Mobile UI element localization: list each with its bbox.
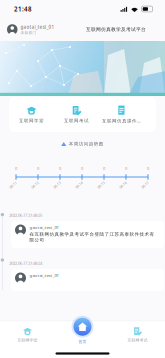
staticText: 0 — [81, 166, 83, 171]
staticText: gaotai_test_01 — [20, 24, 54, 30]
staticText: 06-11 — [8, 182, 17, 188]
staticText: 0 — [59, 166, 61, 171]
staticText: gaotai_test_01 — [29, 224, 58, 230]
staticText: 06-14 — [74, 182, 83, 188]
staticText: 0 — [147, 166, 149, 171]
staticText: 06-12 — [30, 182, 39, 188]
staticText: 0 — [15, 166, 17, 171]
staticText: 0 — [103, 166, 105, 171]
button[interactable]: 互联网考试 — [110, 325, 165, 345]
staticText: 互联网仿真课件… — [102, 118, 141, 124]
staticText: 2022-06-17 21:48:25 — [9, 212, 42, 218]
staticText: 互联网考试 — [64, 118, 89, 124]
button[interactable]: gaotai_test_01 — [7, 23, 54, 36]
staticText: 06-17 — [140, 182, 149, 188]
button[interactable]: gaotai_test_01 — [11, 269, 164, 291]
staticText: 21:48 — [14, 5, 32, 13]
button[interactable]: 互联网学堂 — [0, 325, 55, 345]
button[interactable]: 互联网学堂 — [9, 102, 54, 126]
staticText: 互联网仿真教学及考试平台 — [86, 26, 146, 32]
button[interactable]: 首页 — [62, 316, 102, 344]
staticText: 互联网考试 — [127, 338, 147, 343]
staticText: 本周访问趋势图 — [69, 141, 104, 147]
button[interactable]: 互联网仿真课件… — [99, 102, 144, 126]
staticText: 2022-06-17 21:48:24 — [9, 260, 42, 266]
staticText: 在互联网仿真教学及考试平台登陆了江苏高泰软件技术有限公司 — [29, 231, 154, 243]
button[interactable]: 互联网考试 — [54, 102, 99, 126]
staticText: gaotai_test_01 — [29, 272, 58, 278]
staticText: 未知部门 — [20, 30, 36, 35]
staticText: 06-16 — [118, 182, 127, 188]
staticText: 首页 — [78, 339, 86, 344]
staticText: 0 — [125, 166, 127, 171]
staticText: 互联网学堂 — [19, 118, 44, 124]
staticText: 06-13 — [52, 182, 61, 188]
staticText: 互联网学堂 — [17, 338, 37, 343]
staticText: 06-15 — [96, 182, 105, 188]
button[interactable]: gaotai_test_01 — [11, 221, 164, 248]
staticText: 0 — [37, 166, 39, 171]
